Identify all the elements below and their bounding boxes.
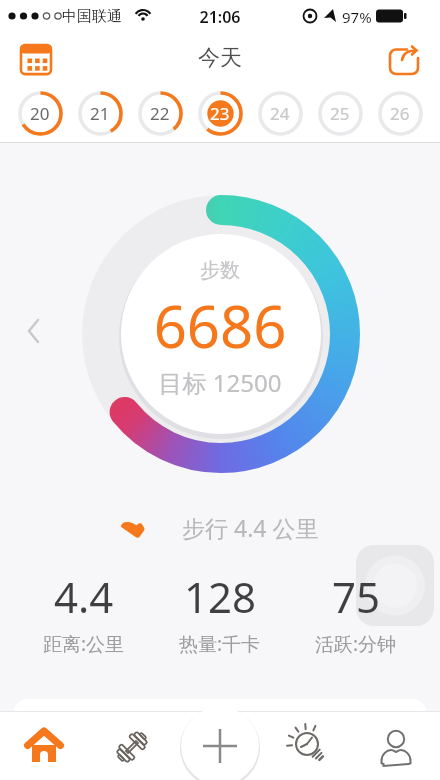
staticText: 24 — [270, 102, 290, 125]
staticText: 热量:千卡 — [179, 631, 261, 657]
staticText: 26 — [390, 102, 410, 125]
staticText: 今天 — [0, 44, 440, 72]
staticText: 6686 — [0, 286, 440, 365]
button[interactable]: 25 — [310, 89, 370, 137]
button[interactable]: 4.4 — [16, 568, 152, 657]
button[interactable] — [104, 724, 160, 772]
staticText: 21 — [90, 102, 110, 125]
staticText: 22 — [150, 102, 170, 125]
button[interactable]: 75 — [288, 568, 424, 657]
staticText: 步行 4.4 公里 — [182, 512, 319, 543]
staticText: 25 — [330, 102, 350, 125]
button[interactable]: 128 — [152, 568, 288, 657]
staticText: 23 — [210, 102, 230, 125]
button[interactable] — [14, 38, 58, 82]
staticText: 75 — [332, 568, 381, 625]
button[interactable]: 步行 4.4 公里 — [110, 505, 330, 550]
button[interactable]: 20 — [10, 89, 70, 137]
staticText: 20 — [30, 102, 50, 125]
staticText: 4.4 — [54, 568, 114, 625]
button[interactable]: 21 — [70, 89, 130, 137]
button[interactable]: 24 — [250, 89, 310, 137]
button[interactable] — [368, 724, 424, 772]
staticText: 97% — [342, 7, 372, 27]
button[interactable] — [280, 724, 336, 772]
staticText: 128 — [184, 568, 257, 625]
button[interactable]: 22 — [130, 89, 190, 137]
staticText: 步数 — [0, 258, 440, 283]
button[interactable] — [382, 38, 426, 82]
staticText: 目标 12500 — [0, 366, 440, 399]
button[interactable]: 23 — [190, 89, 250, 137]
staticText: 21:06 — [0, 6, 440, 28]
staticText: 距离:公里 — [43, 631, 125, 657]
staticText: 中国联通 — [62, 7, 122, 26]
staticText: 活跃:分钟 — [315, 631, 397, 657]
button[interactable] — [16, 724, 72, 772]
button[interactable]: 26 — [370, 89, 430, 137]
button[interactable] — [192, 718, 248, 774]
